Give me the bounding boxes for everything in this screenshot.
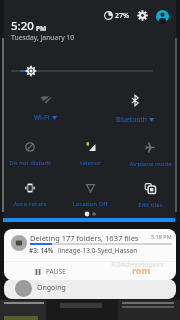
staticText: Edit tiles (138, 201, 163, 209)
button[interactable]: Settings (136, 9, 148, 21)
staticText: Tuesday, January 10 (11, 33, 75, 42)
staticText: PM (36, 24, 47, 33)
button[interactable]: Location Off (60, 179, 120, 211)
button[interactable]: telenor (60, 138, 120, 170)
button[interactable]: Bluetooth (90, 88, 180, 124)
staticText: Wi-Fi (34, 113, 50, 122)
button[interactable]: Deleting 177 folders, 1637 files (4, 229, 176, 280)
button[interactable]: Airplane mode (120, 138, 180, 170)
button[interactable]: Wi-Fi (0, 88, 90, 124)
staticText: Deleting 177 folders, 1637 files (30, 233, 139, 243)
staticText: telenor (80, 159, 101, 167)
button[interactable]: Edit tiles (120, 179, 180, 211)
staticText: rom (132, 264, 151, 276)
button[interactable]: Ongoing (4, 279, 176, 299)
staticText: Ongoing (37, 283, 66, 293)
button[interactable]: User profile (155, 9, 169, 23)
staticText: Do not disturb (9, 159, 51, 167)
staticText: 5:20 (11, 18, 34, 34)
button[interactable]: PAUSE (35, 263, 83, 280)
staticText: XDAdevelopers (111, 260, 164, 270)
button[interactable]: Brightness (25, 65, 37, 77)
staticText: Airplane mode (129, 160, 172, 168)
staticText: PAUSE (46, 267, 66, 276)
staticText: Bluetooth (116, 115, 147, 124)
staticText: 27% (115, 11, 129, 21)
button[interactable]: Auto-rotate (0, 179, 60, 211)
button[interactable]: Do not disturb (0, 138, 60, 170)
staticText: Auto-rotate (13, 200, 47, 208)
staticText: lineage-13.0-Syed_Hassan (58, 246, 138, 255)
staticText: #3: 14% (29, 246, 54, 255)
staticText: Location Off (72, 200, 108, 208)
staticText: 5:18 PM (151, 233, 172, 240)
